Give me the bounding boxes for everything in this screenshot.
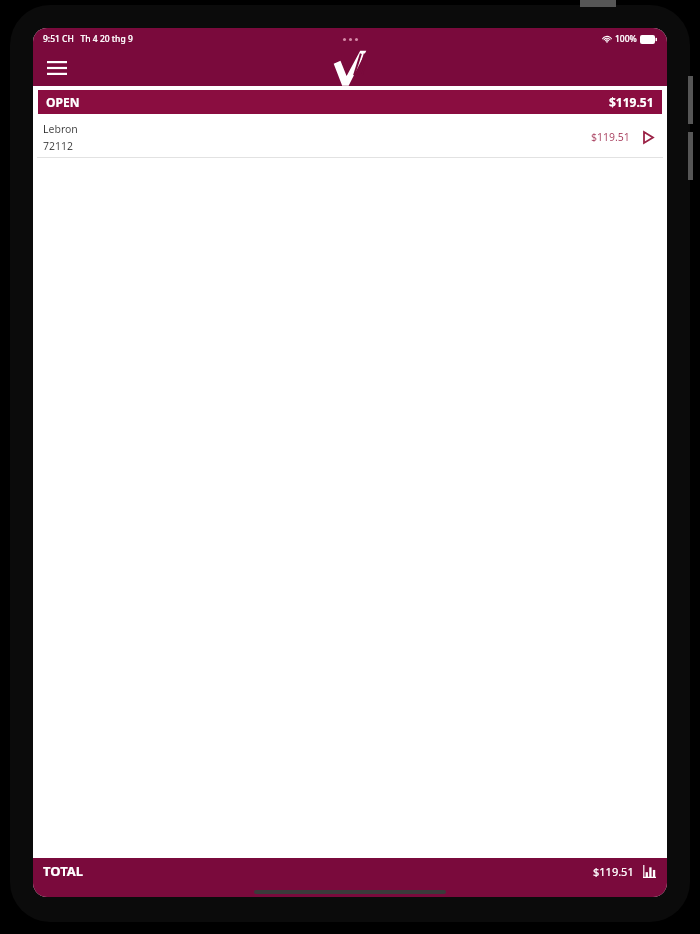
staticText: 100% — [615, 33, 637, 45]
staticText: $119.51 — [591, 130, 630, 144]
button[interactable]: OPEN — [38, 90, 662, 114]
staticText: $119.51 — [593, 864, 634, 879]
staticText: Lebron — [43, 122, 78, 136]
staticText: 72112 — [43, 139, 74, 153]
staticText: OPEN — [46, 94, 80, 110]
button[interactable]: Start order — [639, 128, 657, 146]
staticText: TOTAL — [43, 862, 83, 880]
button[interactable]: Reports — [641, 863, 657, 879]
staticText: $119.51 — [609, 94, 654, 110]
button[interactable]: Lebron — [33, 117, 667, 157]
staticText: 9:51 CH Th 4 20 thg 9 — [43, 33, 133, 45]
button[interactable]: Open menu — [41, 52, 73, 84]
